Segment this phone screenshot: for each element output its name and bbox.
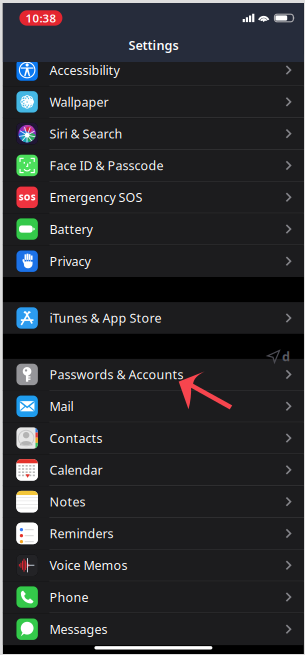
staticText: Wallpaper [49,93,108,110]
staticText: d [282,348,290,365]
staticText: Passwords & Accounts [49,366,183,383]
staticText: Privacy [49,253,90,269]
staticText: Voice Memos [49,557,127,573]
staticText: Accessibility [49,62,119,78]
button[interactable]: Privacy [3,245,304,277]
staticText: Reminders [49,525,113,542]
button[interactable]: Notes [3,486,304,518]
staticText: SOS [19,192,36,203]
button[interactable]: Face ID & Passcode [3,150,304,182]
button[interactable]: Phone [3,581,304,613]
staticText: Battery [49,221,92,237]
button[interactable]: Siri & Search [3,118,304,150]
button[interactable]: Battery [3,213,304,245]
staticText: Emergency SOS [49,189,142,205]
staticText: iTunes & App Store [49,310,161,326]
button[interactable]: Wallpaper [3,86,304,118]
staticText: 10:38 [25,10,56,26]
button[interactable]: Passwords & Accounts [3,359,304,391]
staticText: Siri & Search [49,125,122,142]
staticText: Messages [49,621,107,637]
button[interactable]: Calendar [3,454,304,486]
button[interactable]: Reminders [3,518,304,550]
button[interactable]: Messages [3,613,304,645]
staticText: Contacts [49,430,102,446]
staticText: Settings [128,37,178,53]
button[interactable]: SOS [3,182,304,213]
button[interactable]: Mail [3,391,304,422]
button[interactable]: Contacts [3,422,304,454]
staticText: Notes [49,493,85,510]
staticText: Mail [49,398,73,414]
button[interactable]: Voice Memos [3,550,304,581]
staticText: Calendar [49,461,102,478]
staticText: Phone [49,589,88,605]
button[interactable]: Accessibility [3,54,304,86]
button[interactable]: iTunes & App Store [3,302,304,334]
staticText: Face ID & Passcode [49,157,163,174]
